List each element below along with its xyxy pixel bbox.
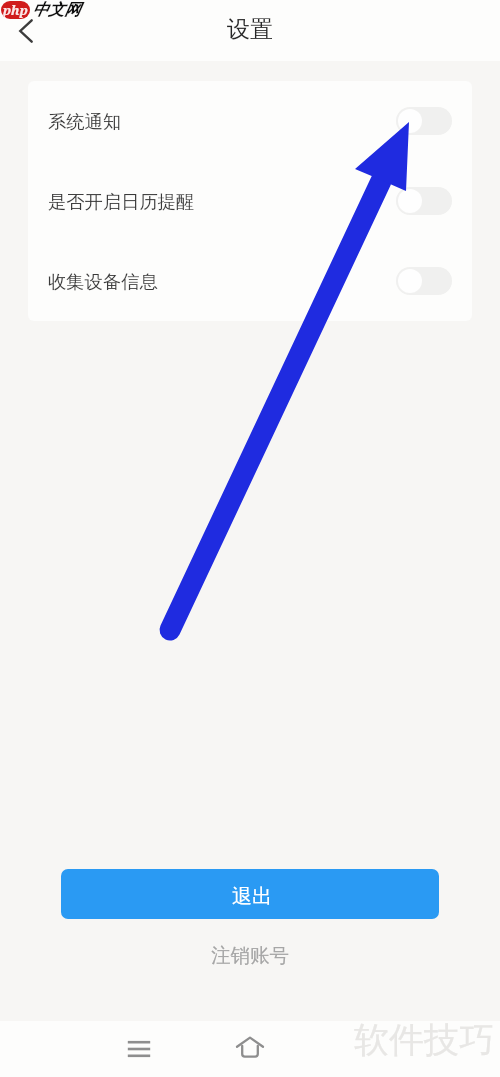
staticText: 中文网	[32, 0, 80, 20]
staticText: 是否开启日历提醒	[48, 190, 195, 213]
button[interactable]: Home	[222, 1021, 278, 1077]
staticText: php	[3, 1, 28, 19]
staticText: 系统通知	[48, 110, 122, 133]
button[interactable]: Menu	[111, 1021, 167, 1077]
staticText: 退出	[232, 884, 272, 909]
button[interactable]: 收集设备信息 开关	[396, 267, 452, 295]
button[interactable]: 是否开启日历提醒	[28, 161, 472, 241]
button[interactable]: 系统通知	[28, 81, 472, 161]
button[interactable]: 注销账号	[197, 938, 303, 973]
button[interactable]: 退出	[61, 869, 439, 919]
staticText: 注销账号	[211, 943, 289, 968]
staticText: 软件技巧	[354, 1018, 494, 1062]
staticText: 设置	[227, 15, 273, 44]
button[interactable]: 系统通知 开关	[396, 107, 452, 135]
button[interactable]: 收集设备信息	[28, 241, 472, 321]
staticText: 收集设备信息	[48, 270, 158, 293]
button[interactable]: 是否开启日历提醒 开关	[396, 187, 452, 215]
button[interactable]: Back	[6, 11, 46, 51]
